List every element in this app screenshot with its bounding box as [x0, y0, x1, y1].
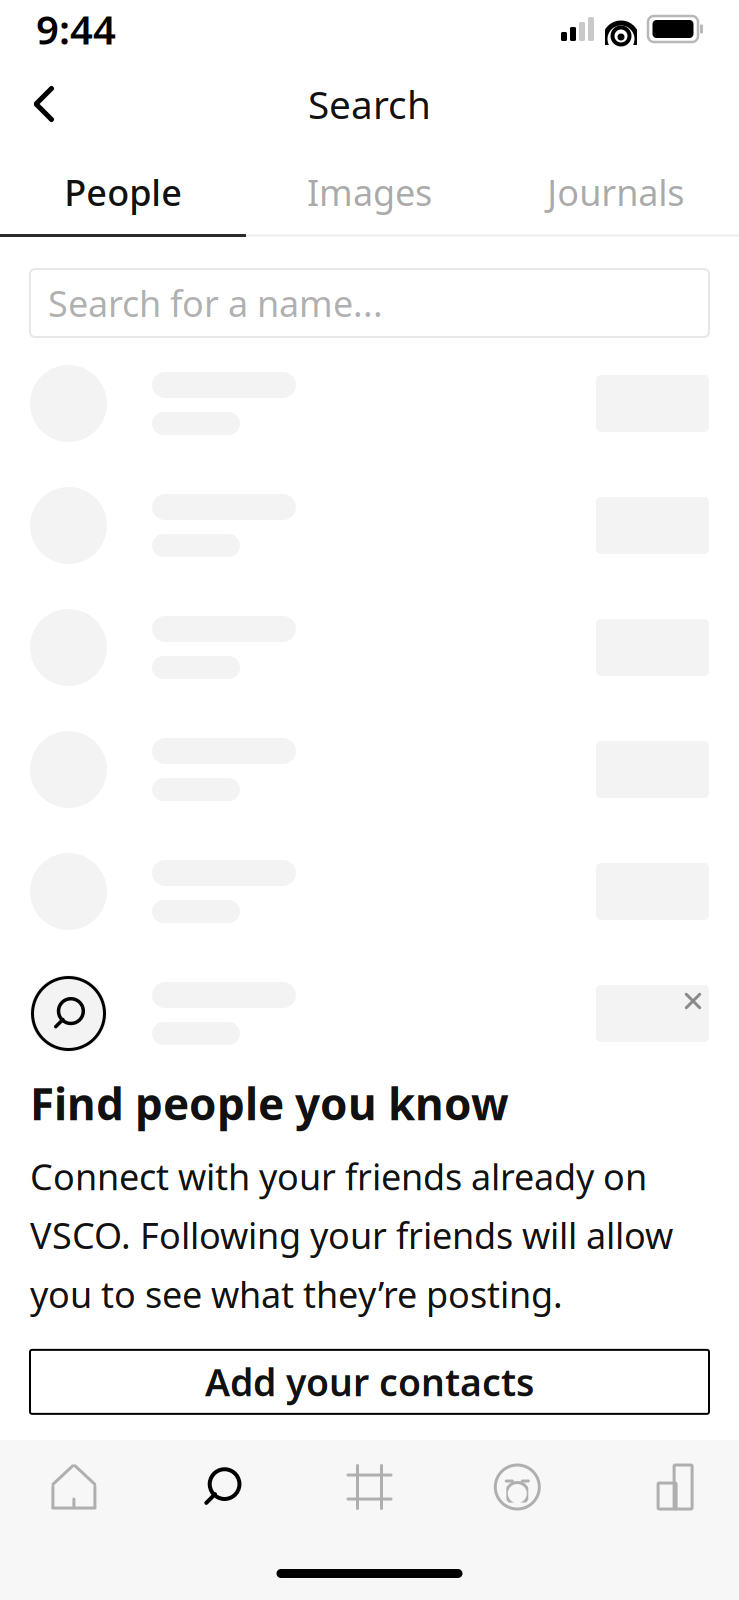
staticText: Add your contacts — [205, 1357, 534, 1407]
button[interactable]: Insights — [591, 1444, 739, 1530]
button[interactable]: Add your contacts — [30, 1350, 709, 1414]
staticText: Search for a name... — [48, 279, 383, 327]
button[interactable]: Dismiss — [673, 981, 713, 1021]
button[interactable]: Journals — [493, 150, 739, 234]
staticText: Search — [308, 78, 431, 130]
staticText: People — [64, 168, 182, 216]
button[interactable]: Search for a name... — [30, 269, 709, 337]
button[interactable]: People — [0, 150, 246, 234]
staticText: Find people you know — [30, 1074, 509, 1132]
button[interactable]: Home — [0, 1444, 148, 1530]
button[interactable]: Back — [12, 72, 76, 136]
staticText: Images — [307, 168, 432, 216]
staticText: Connect with your friends already on VSC… — [30, 1152, 673, 1318]
button[interactable]: Images — [246, 150, 493, 234]
button[interactable]: Profile — [443, 1444, 591, 1530]
button[interactable]: Search — [148, 1444, 296, 1530]
staticText: 9:44 — [36, 2, 116, 55]
staticText: Journals — [547, 168, 684, 216]
button[interactable]: Studio — [296, 1444, 443, 1530]
